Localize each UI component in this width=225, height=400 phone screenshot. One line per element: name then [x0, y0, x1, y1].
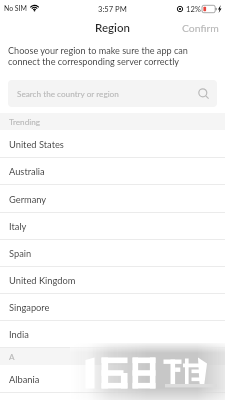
other: Search: [198, 88, 210, 100]
button[interactable]: Germany: [0, 185, 225, 213]
staticText: Singapore: [9, 302, 50, 313]
staticText: Albania: [9, 374, 40, 385]
button[interactable]: United Kingdom: [0, 267, 225, 294]
staticText: Confirm: [182, 22, 219, 34]
staticText: 3:57 PM: [98, 4, 127, 13]
staticText: Search the country or region: [17, 89, 119, 99]
staticText: 12%: [186, 4, 201, 13]
button[interactable]: India: [0, 321, 225, 348]
staticText: Trending: [9, 117, 41, 127]
staticText: Germany: [9, 194, 47, 205]
staticText: No SIM: [4, 4, 27, 12]
staticText: Region: [95, 21, 130, 35]
button[interactable]: United States: [0, 130, 225, 158]
button[interactable]: Confirm: [176, 22, 225, 34]
staticText: United Kingdom: [9, 275, 76, 286]
button[interactable]: Australia: [0, 158, 225, 185]
staticText: Spain: [9, 248, 32, 259]
staticText: United States: [9, 139, 64, 150]
button[interactable]: Albania: [0, 365, 225, 393]
staticText: India: [9, 329, 29, 340]
button[interactable]: Italy: [0, 213, 225, 240]
button[interactable]: Singapore: [0, 294, 225, 321]
button[interactable]: Spain: [0, 240, 225, 267]
staticText: Australia: [9, 166, 45, 177]
staticText: Italy: [9, 221, 27, 232]
staticText: A: [9, 352, 15, 362]
staticText: Choose your region to make sure the app …: [8, 45, 188, 67]
button[interactable]: Search the country or region: [8, 80, 217, 107]
